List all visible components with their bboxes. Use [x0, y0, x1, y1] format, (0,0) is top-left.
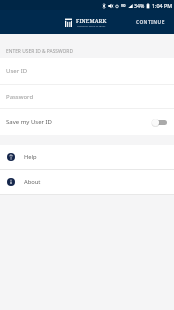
staticText: User ID [6, 67, 28, 75]
staticText: Help [24, 153, 37, 161]
button[interactable]: Help [0, 145, 174, 169]
button[interactable]: About [0, 170, 174, 194]
button[interactable]: Password [0, 85, 174, 108]
staticText: CONTINUE [136, 19, 165, 26]
button[interactable]: Save my User ID [0, 109, 174, 135]
staticText: NATIONAL BANK & TRUST [77, 25, 106, 28]
button[interactable]: CONTINUE [136, 19, 165, 26]
button[interactable]: User ID [0, 58, 174, 84]
staticText: ENTER USER ID & PASSWORD [6, 48, 73, 55]
staticText: 34% [134, 2, 145, 9]
staticText: FINEMARK [76, 17, 107, 24]
staticText: About [24, 178, 41, 186]
staticText: 1:04 PM [152, 2, 173, 9]
staticText: Password [6, 93, 34, 101]
staticText: Save my User ID [6, 118, 52, 126]
staticText: VO [121, 4, 126, 8]
